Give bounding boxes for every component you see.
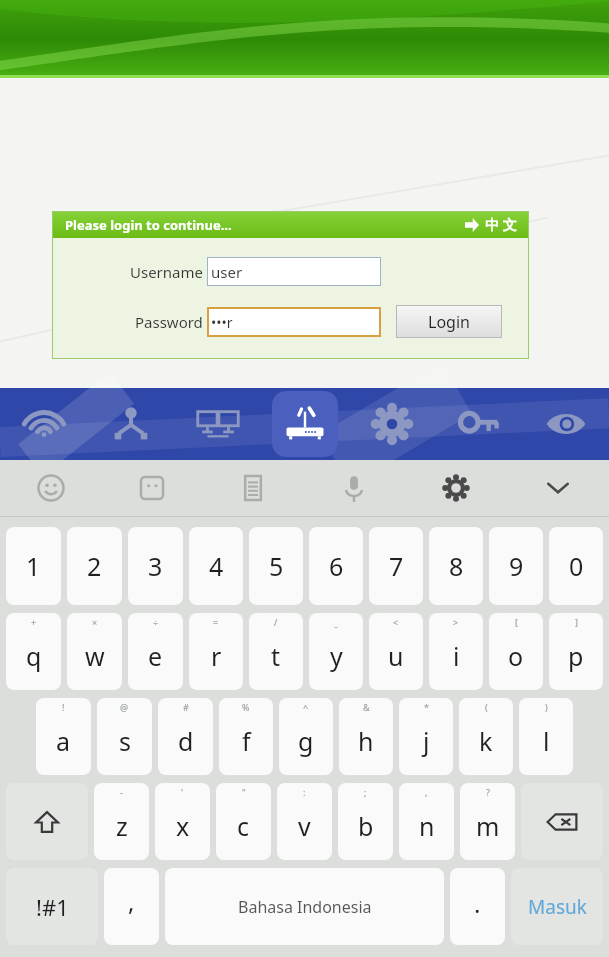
staticText: z bbox=[116, 809, 128, 843]
staticText: - bbox=[120, 786, 123, 798]
button[interactable]: Clipboard bbox=[202, 460, 303, 516]
button[interactable]: Hide keyboard bbox=[507, 460, 609, 516]
staticText: y bbox=[330, 639, 343, 673]
button[interactable]: ' bbox=[155, 783, 210, 860]
staticText: 6 bbox=[329, 549, 344, 583]
button[interactable]: Keyboard settings bbox=[405, 460, 507, 516]
staticText: n bbox=[419, 809, 435, 843]
staticText: > bbox=[453, 616, 459, 628]
staticText: Please login to continue... bbox=[65, 216, 232, 234]
staticText: ( bbox=[485, 701, 488, 713]
staticText: ? bbox=[486, 786, 490, 798]
button[interactable]: Voice input bbox=[303, 460, 405, 516]
staticText: ; bbox=[364, 786, 367, 798]
button[interactable]: 5 bbox=[249, 527, 303, 605]
button[interactable]: 0 bbox=[549, 527, 603, 605]
button[interactable]: & bbox=[339, 698, 393, 775]
button[interactable]: !#1 bbox=[6, 868, 98, 945]
button[interactable]: 1 bbox=[6, 527, 61, 605]
staticText: 3 bbox=[148, 549, 163, 583]
staticText: 中 文 bbox=[485, 215, 517, 234]
button[interactable]: •••r bbox=[207, 307, 381, 337]
button[interactable]: ! bbox=[36, 698, 91, 775]
button[interactable]: Masuk bbox=[511, 868, 603, 945]
staticText: k bbox=[479, 724, 493, 758]
button[interactable]: _ bbox=[309, 613, 363, 690]
button[interactable]: ; bbox=[338, 783, 393, 860]
button[interactable]: Settings bbox=[348, 388, 435, 460]
button[interactable]: = bbox=[189, 613, 243, 690]
button[interactable]: 2 bbox=[67, 527, 122, 605]
button[interactable]: Security bbox=[435, 388, 522, 460]
staticText: 8 bbox=[449, 549, 464, 583]
staticText: s bbox=[119, 724, 131, 758]
button[interactable]: 9 bbox=[489, 527, 543, 605]
staticText: ! bbox=[62, 701, 65, 713]
button[interactable]: [ bbox=[489, 613, 543, 690]
button[interactable]: Monitor bbox=[522, 388, 609, 460]
staticText: o bbox=[508, 639, 524, 673]
button[interactable]: Login bbox=[396, 305, 502, 338]
staticText: ' bbox=[181, 786, 184, 798]
button[interactable]: : bbox=[277, 783, 332, 860]
staticText: 1 bbox=[26, 549, 41, 583]
staticText: j bbox=[423, 724, 430, 758]
button[interactable]: ? bbox=[460, 783, 515, 860]
button[interactable]: 4 bbox=[189, 527, 243, 605]
staticText: 2 bbox=[87, 549, 102, 583]
button[interactable]: user bbox=[207, 257, 381, 286]
button[interactable]: , bbox=[104, 868, 159, 945]
button[interactable]: Router bbox=[261, 388, 348, 460]
button[interactable]: Backspace bbox=[521, 783, 603, 860]
button[interactable]: ) bbox=[519, 698, 573, 775]
staticText: @ bbox=[120, 701, 129, 713]
button[interactable]: 中 文 bbox=[485, 215, 529, 234]
button[interactable]: ] bbox=[549, 613, 603, 690]
button[interactable]: Bahasa Indonesia bbox=[165, 868, 444, 945]
button[interactable]: + bbox=[6, 613, 61, 690]
staticText: [ bbox=[515, 616, 518, 628]
button[interactable]: Switch language bbox=[459, 212, 485, 238]
staticText: a bbox=[56, 724, 71, 758]
button[interactable]: / bbox=[249, 613, 303, 690]
button[interactable]: " bbox=[216, 783, 271, 860]
button[interactable]: . bbox=[450, 868, 505, 945]
staticText: d bbox=[178, 724, 194, 758]
button[interactable]: < bbox=[369, 613, 423, 690]
button[interactable]: Clients bbox=[174, 388, 261, 460]
button[interactable]: 6 bbox=[309, 527, 363, 605]
button[interactable]: % bbox=[219, 698, 273, 775]
staticText: r bbox=[211, 639, 222, 673]
button[interactable]: > bbox=[429, 613, 483, 690]
button[interactable]: Wireless bbox=[0, 388, 87, 460]
staticText: Masuk bbox=[528, 894, 587, 920]
button[interactable]: Shift bbox=[6, 783, 88, 860]
staticText: & bbox=[363, 701, 370, 713]
button[interactable]: ÷ bbox=[128, 613, 183, 690]
staticText: Password bbox=[135, 312, 203, 332]
button[interactable]: 7 bbox=[369, 527, 423, 605]
button[interactable]: @ bbox=[97, 698, 152, 775]
button[interactable]: , bbox=[399, 783, 454, 860]
staticText: : bbox=[303, 786, 306, 798]
staticText: u bbox=[388, 639, 404, 673]
staticText: m bbox=[476, 809, 500, 843]
staticText: 4 bbox=[209, 549, 224, 583]
staticText: b bbox=[358, 809, 374, 843]
button[interactable]: ^ bbox=[279, 698, 333, 775]
button[interactable]: Emoji bbox=[0, 460, 101, 516]
staticText: 9 bbox=[509, 549, 524, 583]
button[interactable]: ( bbox=[459, 698, 513, 775]
button[interactable]: # bbox=[158, 698, 213, 775]
staticText: 0 bbox=[569, 549, 584, 583]
button[interactable]: 3 bbox=[128, 527, 183, 605]
button[interactable]: Stickers bbox=[101, 460, 202, 516]
staticText: × bbox=[92, 616, 98, 628]
button[interactable]: - bbox=[94, 783, 149, 860]
staticText: " bbox=[242, 786, 246, 798]
button[interactable]: 8 bbox=[429, 527, 483, 605]
button[interactable]: * bbox=[399, 698, 453, 775]
staticText: 7 bbox=[389, 549, 404, 583]
button[interactable]: Network map bbox=[87, 388, 174, 460]
button[interactable]: × bbox=[67, 613, 122, 690]
